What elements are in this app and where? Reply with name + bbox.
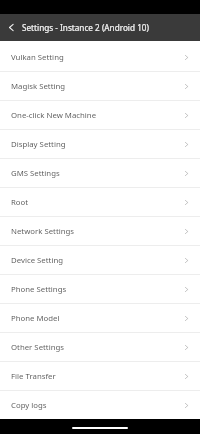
staticText: Phone Settings xyxy=(11,284,183,295)
staticText: Device Setting xyxy=(11,255,183,266)
button[interactable]: Copy logs xyxy=(0,391,200,419)
staticText: File Transfer xyxy=(11,371,183,382)
button[interactable]: Display Setting xyxy=(0,130,200,158)
button[interactable]: Other Settings xyxy=(0,333,200,361)
button[interactable]: File Transfer xyxy=(0,362,200,390)
staticText: GMS Settings xyxy=(11,168,183,179)
button[interactable]: Phone Settings xyxy=(0,275,200,303)
staticText: Other Settings xyxy=(11,342,183,353)
button[interactable]: Device Setting xyxy=(0,246,200,274)
button[interactable]: Magisk Setting xyxy=(0,72,200,100)
staticText: Network Settings xyxy=(11,226,183,237)
button[interactable]: One-click New Machine xyxy=(0,101,200,129)
button[interactable]: Network Settings xyxy=(0,217,200,245)
staticText: Display Setting xyxy=(11,139,183,150)
button[interactable]: Back xyxy=(0,14,22,41)
button[interactable]: Phone Model xyxy=(0,304,200,332)
button[interactable]: GMS Settings xyxy=(0,159,200,187)
staticText: Settings - Instance 2 (Android 10) xyxy=(22,22,149,33)
staticText: Copy logs xyxy=(11,400,183,411)
staticText: Root xyxy=(11,197,183,208)
staticText: One-click New Machine xyxy=(11,110,183,121)
staticText: Magisk Setting xyxy=(11,81,183,92)
button[interactable]: Root xyxy=(0,188,200,216)
button[interactable]: Vulkan Setting xyxy=(0,43,200,71)
staticText: Phone Model xyxy=(11,313,183,324)
staticText: Vulkan Setting xyxy=(11,52,183,63)
